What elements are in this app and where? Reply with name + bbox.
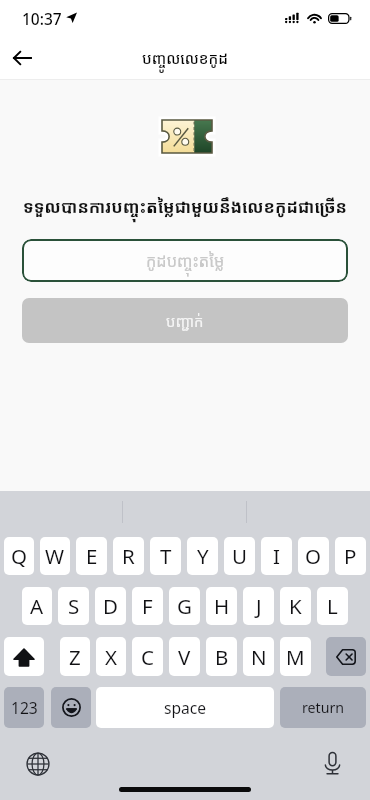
button[interactable]: A [22,587,52,625]
button[interactable]: 123 [4,687,44,728]
button[interactable]: កូដបញ្ចុះតម្លៃ [22,239,348,282]
button[interactable]: R [113,537,144,575]
button[interactable]: Shift [4,637,44,676]
button[interactable]: T [150,537,181,575]
button[interactable]: N [243,637,274,676]
button[interactable]: S [58,587,89,625]
staticText: Y [197,542,209,570]
staticText: X [105,643,118,671]
button[interactable]: U [224,537,255,575]
button[interactable]: F [132,587,163,625]
button[interactable]: return [280,687,366,728]
button[interactable]: M [280,637,311,676]
staticText: L [327,592,338,620]
button[interactable]: Z [60,637,90,676]
button[interactable]: J [243,587,274,625]
staticText: G [177,592,192,620]
button[interactable]: B [206,637,237,676]
button[interactable]: Emoji [51,687,91,728]
staticText: W [45,542,65,570]
staticText: H [214,592,230,620]
button[interactable]: C [132,637,163,676]
button[interactable]: Y [187,537,218,575]
button[interactable]: បញ្ជាក់ [22,298,348,343]
staticText: D [103,592,118,620]
button[interactable]: K [280,587,311,625]
staticText: V [178,643,191,671]
staticText: Q [11,542,28,570]
staticText: Z [69,643,81,671]
staticText: space [164,697,207,718]
staticText: 10:37 [22,8,62,29]
staticText: return [302,698,345,717]
staticText: A [30,592,44,620]
staticText: R [122,542,135,570]
staticText: C [141,643,154,671]
button[interactable]: Dictation [320,752,344,776]
button[interactable]: space [96,687,274,728]
staticText: B [215,643,229,671]
button[interactable]: D [95,587,126,625]
staticText: P [344,542,357,570]
button[interactable]: G [169,587,200,625]
staticText: បញ្ចូលលេខកូដ [142,48,229,68]
staticText: J [256,592,262,620]
staticText: E [86,542,98,570]
button[interactable]: V [169,637,200,676]
button[interactable]: I [261,537,292,575]
staticText: K [289,592,302,620]
button[interactable]: W [40,537,70,575]
button[interactable]: Back [2,38,42,78]
button[interactable]: O [298,537,329,575]
staticText: O [305,542,322,570]
button[interactable]: Backspace [326,637,366,676]
button[interactable]: Q [4,537,34,575]
button[interactable]: H [206,587,237,625]
staticText: I [273,542,280,570]
button[interactable]: P [335,537,366,575]
button[interactable]: X [96,637,126,676]
button[interactable]: L [317,587,348,625]
staticText: T [160,542,172,570]
staticText: S [68,592,80,620]
staticText: F [142,592,153,620]
staticText: កូដបញ្ចុះតម្លៃ [146,250,225,272]
staticText: 123 [11,697,38,718]
button[interactable]: Change keyboard [26,752,50,776]
staticText: M [286,643,305,671]
staticText: U [232,542,247,570]
staticText: ទទួលបានការបញ្ចុះតម្លៃជាមួយនឹងលេខកូដជាច្រ… [8,195,362,218]
staticText: បញ្ជាក់ [166,311,204,331]
staticText: N [251,643,267,671]
button[interactable]: E [76,537,107,575]
